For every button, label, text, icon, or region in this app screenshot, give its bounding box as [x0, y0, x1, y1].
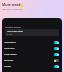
button[interactable]: Home feed — [2, 45, 62, 51]
button[interactable]: Messages — [2, 57, 62, 63]
button[interactable]: Notifications — [2, 39, 62, 45]
staticText: Profiles — [4, 65, 12, 68]
staticText: Hide posts containing — [2, 8, 23, 11]
staticText: Messages — [4, 59, 14, 62]
staticText: Muted words — [5, 25, 21, 28]
button[interactable]: On — [54, 65, 59, 68]
button[interactable]: On — [54, 53, 59, 56]
staticText: Public replies — [4, 53, 17, 56]
staticText: or tag — [7, 33, 13, 35]
button[interactable]: On — [54, 41, 59, 44]
staticText: Mute words — [2, 2, 23, 7]
staticText: Home feed — [4, 47, 15, 50]
staticText: Add muted word — [7, 30, 23, 33]
button[interactable]: Profiles — [2, 63, 62, 69]
staticText: Notifications — [4, 41, 16, 44]
button[interactable]: Add muted word — [5, 29, 59, 36]
button[interactable]: Public replies — [2, 51, 62, 57]
button[interactable]: Off — [54, 59, 59, 62]
button[interactable]: On — [54, 47, 59, 50]
